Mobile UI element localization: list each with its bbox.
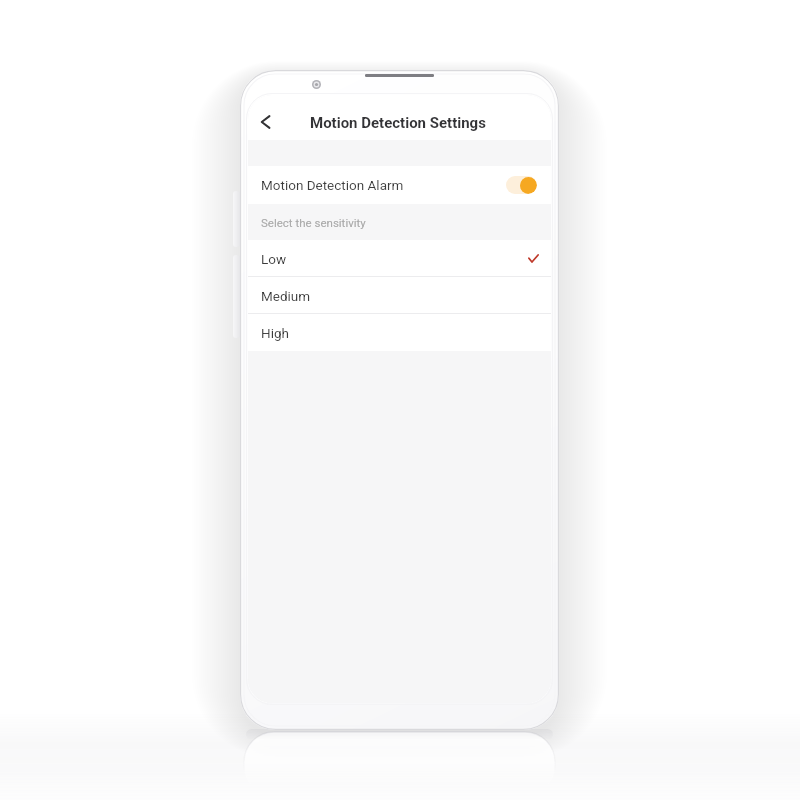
button[interactable]: Medium <box>248 277 551 314</box>
button[interactable]: Low <box>248 240 551 277</box>
staticText: Low <box>261 251 287 267</box>
staticText: Select the sensitivity <box>261 216 366 229</box>
button[interactable]: Motion Detection Alarm <box>248 166 551 204</box>
staticText: Motion Detection Settings <box>310 114 486 132</box>
staticText: High <box>261 325 289 341</box>
staticText: Motion Detection Alarm <box>261 177 404 193</box>
other: Selected <box>528 254 539 263</box>
staticText: Medium <box>261 288 311 304</box>
button[interactable]: Motion Detection Alarm toggle, on <box>506 176 537 194</box>
button[interactable]: High <box>248 314 551 351</box>
button[interactable]: Back <box>251 105 277 140</box>
